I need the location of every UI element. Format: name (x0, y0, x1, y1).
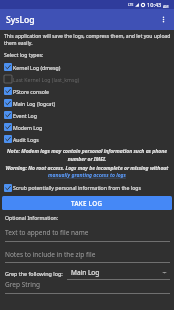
staticText: Scrub potentially personal information f… (13, 184, 141, 191)
staticText: PStore console (13, 88, 50, 95)
staticText: Main Log (71, 268, 100, 277)
staticText: Grep the following log: (5, 270, 63, 277)
button[interactable]: Kernel Log (dmesg) (0, 61, 174, 73)
staticText: Note: Modem logs may contain personal in… (4, 148, 170, 162)
staticText: Optional Information: (5, 214, 59, 221)
button[interactable]: PStore console (0, 85, 174, 97)
staticText: Last Kernel Log (last_kmsg) (13, 76, 80, 83)
staticText: Grep String (5, 280, 40, 289)
staticText: AM (163, 4, 169, 9)
button[interactable]: manually granting access to logs (0, 172, 174, 179)
button[interactable]: Main Log (logcat) (0, 97, 174, 109)
staticText: Select log types: (4, 51, 44, 58)
staticText: Audit Logs (13, 136, 39, 143)
button[interactable]: More options (153, 9, 174, 30)
button[interactable]: Last Kernel Log (last_kmsg) (0, 73, 174, 85)
button[interactable]: Scrub potentially personal information f… (0, 182, 174, 193)
staticText: TAKE LOG (71, 199, 103, 207)
staticText: Event Log (13, 112, 37, 119)
button[interactable]: Main Log (67, 268, 170, 280)
staticText: LTE (128, 3, 134, 7)
button[interactable]: Modem Log (0, 121, 174, 133)
staticText: Modem Log (13, 124, 43, 131)
staticText: Warning: No root access. Logs may be inc… (2, 165, 172, 172)
staticText: Main Log (logcat) (13, 100, 55, 107)
button[interactable]: Event Log (0, 109, 174, 121)
staticText: 10:43 (147, 1, 162, 9)
button[interactable]: Audit Logs (0, 133, 174, 145)
button[interactable]: TAKE LOG (2, 196, 172, 210)
staticText: Notes to include in the zip file (5, 250, 96, 259)
staticText: Kernel Log (dmesg) (13, 64, 61, 71)
staticText: SysLog (6, 14, 35, 26)
staticText: Text to append to file name (5, 228, 89, 237)
staticText: This application will save the logs, com… (4, 33, 174, 47)
